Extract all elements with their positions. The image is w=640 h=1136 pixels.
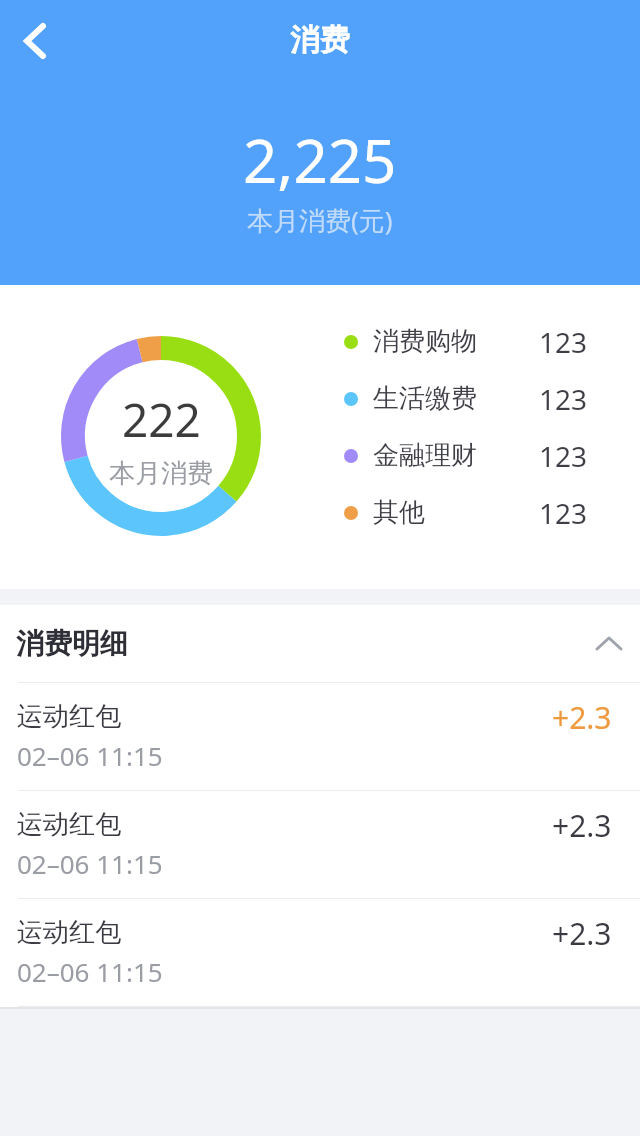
staticText: 123 — [539, 323, 588, 361]
staticText: 222 — [122, 388, 201, 451]
staticText: 123 — [539, 380, 588, 418]
staticText: 消费 — [290, 21, 350, 59]
staticText: 生活缴费 — [373, 382, 477, 415]
button[interactable]: 金融理财 — [344, 427, 588, 484]
staticText: 123 — [539, 437, 588, 475]
staticText: 消费明细 — [16, 626, 128, 661]
staticText: 消费购物 — [373, 325, 477, 358]
button[interactable]: 消费明细 — [0, 605, 640, 682]
staticText: +2.3 — [552, 697, 612, 738]
staticText: 02–06 11:15 — [17, 954, 163, 989]
button[interactable]: 生活缴费 — [344, 370, 588, 427]
button[interactable]: 消费购物 — [344, 313, 588, 370]
staticText: 2,225 — [243, 119, 397, 201]
staticText: +2.3 — [552, 913, 612, 954]
staticText: 运动红包 — [17, 916, 121, 949]
staticText: 02–06 11:15 — [17, 846, 163, 881]
staticText: 02–06 11:15 — [17, 738, 163, 773]
staticText: 运动红包 — [17, 700, 121, 733]
staticText: 其他 — [373, 496, 425, 529]
staticText: 运动红包 — [17, 808, 121, 841]
button[interactable]: 运动红包 — [0, 683, 640, 790]
staticText: 金融理财 — [373, 439, 477, 472]
staticText: +2.3 — [552, 805, 612, 846]
button[interactable] — [14, 16, 58, 60]
staticText: 123 — [539, 494, 588, 532]
button[interactable]: 运动红包 — [0, 791, 640, 898]
staticText: 本月消费(元) — [247, 202, 393, 238]
button[interactable]: 运动红包 — [0, 899, 640, 1006]
staticText: 本月消费 — [109, 457, 213, 490]
button[interactable]: 其他 — [344, 484, 588, 541]
